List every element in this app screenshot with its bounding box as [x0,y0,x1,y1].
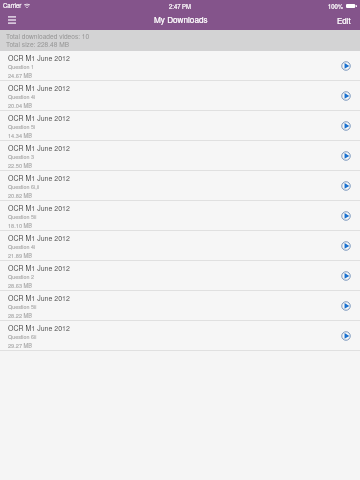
staticText: Question 1 [8,63,35,71]
button[interactable]: Play video [338,238,353,253]
button[interactable]: Play video [338,88,353,103]
button[interactable]: Menu [4,12,20,28]
staticText: Question 5i [8,123,36,131]
staticText: OCR M1 June 2012 [8,203,70,213]
staticText: Total downloaded videos: 10 [6,31,90,40]
staticText: 29.27 MB [8,342,32,350]
button[interactable]: Edit [328,12,360,29]
staticText: OCR M1 June 2012 [8,263,70,273]
staticText: OCR M1 June 2012 [8,53,70,63]
staticText: 22.50 MB [8,162,32,170]
staticText: 18.10 MB [8,222,32,230]
staticText: OCR M1 June 2012 [8,113,70,123]
staticText: Question 4i [8,93,36,101]
staticText: OCR M1 June 2012 [8,143,70,153]
staticText: Question 3 [8,153,35,161]
button[interactable]: OCR M1 June 2012 [0,291,360,321]
button[interactable]: OCR M1 June 2012 [0,81,360,111]
staticText: OCR M1 June 2012 [8,323,70,333]
button[interactable]: OCR M1 June 2012 [0,201,360,231]
staticText: 28.63 MB [8,282,32,290]
button[interactable]: OCR M1 June 2012 [0,51,360,81]
button[interactable]: OCR M1 June 2012 [0,111,360,141]
button[interactable]: Play video [338,268,353,283]
staticText: Question 6i,ii [8,183,40,191]
button[interactable]: OCR M1 June 2012 [0,141,360,171]
staticText: 28.22 MB [8,312,32,320]
staticText: OCR M1 June 2012 [8,83,70,93]
staticText: 2:47 PM [169,2,191,10]
button[interactable]: Play video [338,208,353,223]
staticText: Question 5ii [8,213,37,221]
button[interactable]: Play video [338,178,353,193]
button[interactable]: Play video [338,148,353,163]
staticText: OCR M1 June 2012 [8,233,70,243]
staticText: Edit [337,15,351,26]
staticText: 14.34 MB [8,132,32,140]
button[interactable]: Play video [338,328,353,343]
button[interactable]: Play video [338,118,353,133]
staticText: OCR M1 June 2012 [8,173,70,183]
staticText: 20.04 MB [8,102,32,110]
staticText: My Downloads [154,14,208,26]
staticText: OCR M1 June 2012 [8,293,70,303]
button[interactable]: OCR M1 June 2012 [0,321,360,351]
staticText: Carrier [3,1,22,10]
staticText: 24.67 MB [8,72,32,80]
button[interactable]: OCR M1 June 2012 [0,231,360,261]
button[interactable]: Play video [338,298,353,313]
button[interactable]: OCR M1 June 2012 [0,171,360,201]
staticText: Total size: 228.48 MB [6,39,70,48]
button[interactable]: Play video [338,58,353,73]
staticText: Question 5ii [8,303,37,311]
staticText: 100% [328,2,344,10]
button[interactable]: OCR M1 June 2012 [0,261,360,291]
staticText: 20.82 MB [8,192,32,200]
staticText: Question 6ii [8,333,37,341]
staticText: Question 4i [8,243,36,251]
staticText: 21.89 MB [8,252,32,260]
staticText: Question 2 [8,273,35,281]
